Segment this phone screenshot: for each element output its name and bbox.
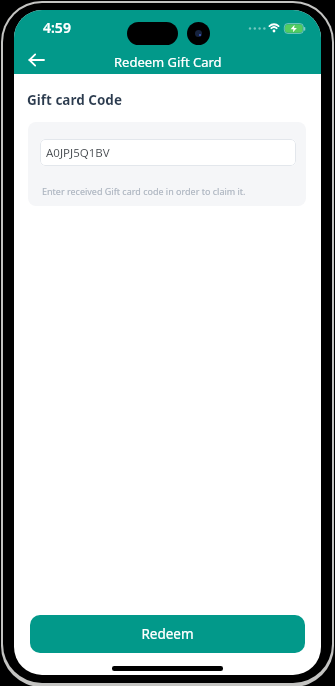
button[interactable] <box>18 48 56 72</box>
staticText: 4:59 <box>43 18 71 37</box>
staticText: A0JPJ5Q1BV <box>46 145 110 161</box>
staticText: Redeem <box>141 625 194 643</box>
button[interactable]: Redeem <box>30 615 305 653</box>
staticText: Gift card Code <box>27 91 122 109</box>
staticText: Redeem Gift Card <box>114 53 222 70</box>
button[interactable]: A0JPJ5Q1BV <box>40 139 296 166</box>
staticText: Enter received Gift card code in order t… <box>42 185 246 197</box>
